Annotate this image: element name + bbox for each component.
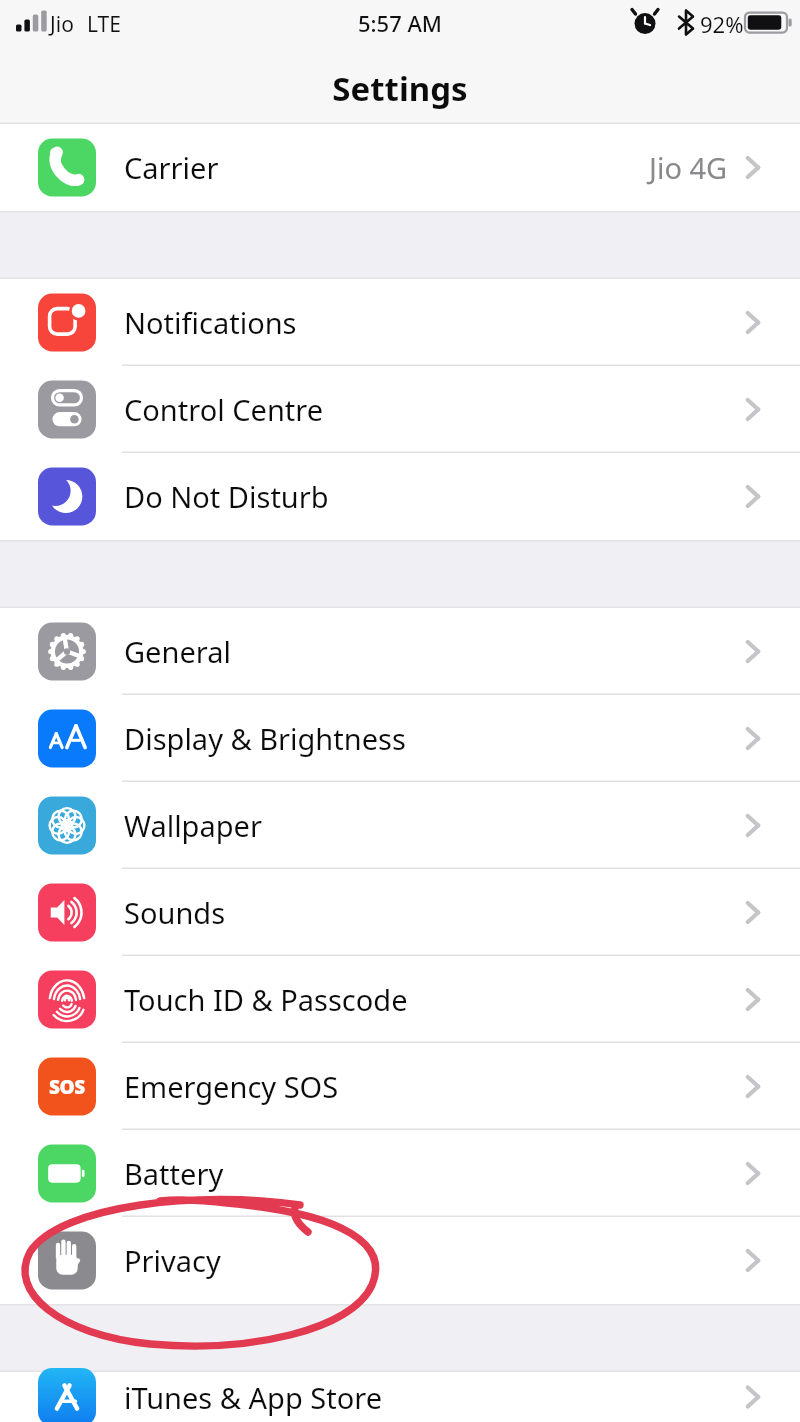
staticText: Do Not Disturb xyxy=(124,477,329,516)
button[interactable]: General xyxy=(0,608,800,695)
staticText: Emergency SOS xyxy=(124,1067,339,1106)
staticText: General xyxy=(124,632,231,671)
staticText: 92% xyxy=(700,9,744,39)
staticText: Touch ID & Passcode xyxy=(124,980,408,1019)
staticText: LTE xyxy=(87,10,121,39)
button[interactable]: iTunes & App Store xyxy=(0,1372,800,1422)
staticText: 5:57 AM xyxy=(358,8,443,38)
button[interactable]: Notifications xyxy=(0,279,800,366)
staticText: Carrier xyxy=(124,148,219,187)
staticText: Jio 4G xyxy=(649,148,728,187)
staticText: Display & Brightness xyxy=(124,719,406,758)
staticText: Wallpaper xyxy=(124,806,262,845)
staticText: Jio xyxy=(50,10,74,39)
staticText: iTunes & App Store xyxy=(124,1378,382,1417)
button[interactable]: Touch ID & Passcode xyxy=(0,956,800,1043)
staticText: SOS xyxy=(49,1074,85,1100)
button[interactable]: Battery xyxy=(0,1130,800,1217)
button[interactable]: Control Centre xyxy=(0,366,800,453)
staticText: Settings xyxy=(332,66,468,111)
button[interactable]: Privacy xyxy=(0,1217,800,1304)
staticText: Battery xyxy=(124,1154,224,1193)
button[interactable]: Display & Brightness xyxy=(0,695,800,782)
staticText: Privacy xyxy=(124,1241,221,1280)
button[interactable]: Sounds xyxy=(0,869,800,956)
staticText: Sounds xyxy=(124,893,226,932)
button[interactable]: Do Not Disturb xyxy=(0,453,800,540)
button[interactable]: Wallpaper xyxy=(0,782,800,869)
staticText: Notifications xyxy=(124,303,297,342)
button[interactable]: Carrier xyxy=(0,124,800,211)
button[interactable]: SOS xyxy=(0,1043,800,1130)
staticText: Control Centre xyxy=(124,390,324,429)
